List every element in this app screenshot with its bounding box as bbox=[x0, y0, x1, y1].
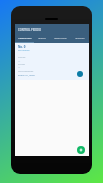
staticText: Enero 31, 2020 bbox=[18, 73, 35, 76]
button[interactable]: CONTROL PEDIDO bbox=[15, 24, 89, 35]
staticText: ESTADO bbox=[18, 63, 26, 66]
staticText: CONTROL PEDIDO bbox=[18, 28, 42, 32]
button[interactable]: DETALLE bbox=[34, 35, 50, 43]
button[interactable]: INFORMACION bbox=[15, 35, 34, 43]
button[interactable]: Add bbox=[77, 146, 85, 154]
staticText: CLIENTE bbox=[18, 56, 26, 59]
staticText: SIN DATOS bbox=[18, 49, 30, 52]
button[interactable]: OBSERVACION bbox=[50, 35, 70, 43]
button[interactable]: Edit bbox=[77, 71, 83, 77]
staticText: INFORMACION bbox=[18, 37, 32, 40]
staticText: HISTORIAL bbox=[75, 37, 85, 40]
staticText: --- bbox=[18, 60, 21, 63]
button[interactable]: HISTORIAL bbox=[70, 35, 89, 43]
staticText: --- bbox=[18, 66, 21, 69]
staticText: OBSERVACION bbox=[54, 37, 67, 40]
staticText: FECHA REGISTRO bbox=[18, 70, 34, 73]
staticText: No. 0 bbox=[18, 45, 26, 49]
staticText: DETALLE bbox=[38, 37, 46, 40]
